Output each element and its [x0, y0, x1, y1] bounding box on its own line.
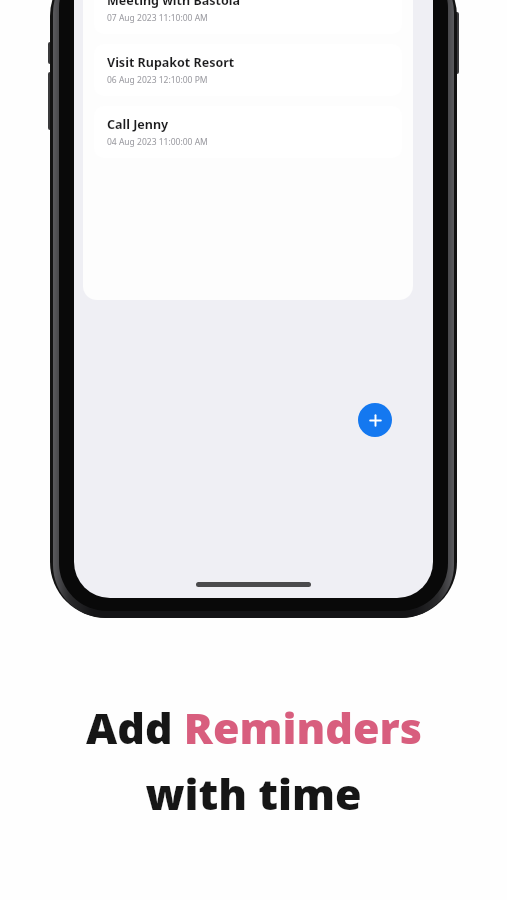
- staticText: 07 Aug 2023 11:10:00 AM: [107, 12, 208, 24]
- button[interactable]: Call Jenny: [94, 106, 402, 158]
- staticText: with time: [145, 764, 362, 823]
- staticText: Visit Rupakot Resort: [107, 54, 235, 71]
- staticText: 06 Aug 2023 12:10:00 PM: [107, 74, 208, 86]
- button[interactable]: Add reminder: [358, 403, 392, 437]
- button[interactable]: Meeting with Bastola: [94, 0, 402, 34]
- button[interactable]: Visit Rupakot Resort: [94, 44, 402, 96]
- staticText: Meeting with Bastola: [107, 0, 240, 9]
- staticText: Call Jenny: [107, 116, 169, 133]
- staticText: 04 Aug 2023 11:00:00 AM: [107, 136, 208, 148]
- staticText: Add Reminders: [86, 698, 422, 757]
